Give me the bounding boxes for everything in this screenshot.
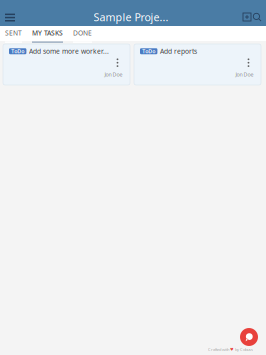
staticText: Jon Doe xyxy=(104,71,122,78)
staticText: Crafted with xyxy=(208,347,230,352)
button[interactable]: ToDo xyxy=(134,44,261,85)
staticText: SENT xyxy=(5,28,22,37)
staticText: Add reports xyxy=(160,47,197,56)
button[interactable]: Add xyxy=(242,8,252,26)
staticText: ToDo xyxy=(11,48,24,55)
staticText: by Cobuss xyxy=(234,347,253,352)
staticText: Sample Proje... xyxy=(93,10,168,24)
button[interactable]: DONE xyxy=(68,26,97,41)
staticText: ♥ xyxy=(230,347,234,352)
button[interactable]: Menu xyxy=(0,8,20,26)
staticText: Jon Doe xyxy=(235,71,253,78)
button[interactable]: ToDo xyxy=(3,44,130,85)
staticText: MY TASKS xyxy=(32,28,63,37)
staticText: ToDo xyxy=(142,48,155,55)
staticText: DONE xyxy=(73,28,92,37)
staticText: Add some more worker... xyxy=(29,47,109,56)
button[interactable]: MY TASKS xyxy=(27,26,68,41)
button[interactable]: Search xyxy=(252,8,262,26)
button[interactable]: SENT xyxy=(0,26,27,41)
button[interactable]: Chat xyxy=(240,328,258,346)
